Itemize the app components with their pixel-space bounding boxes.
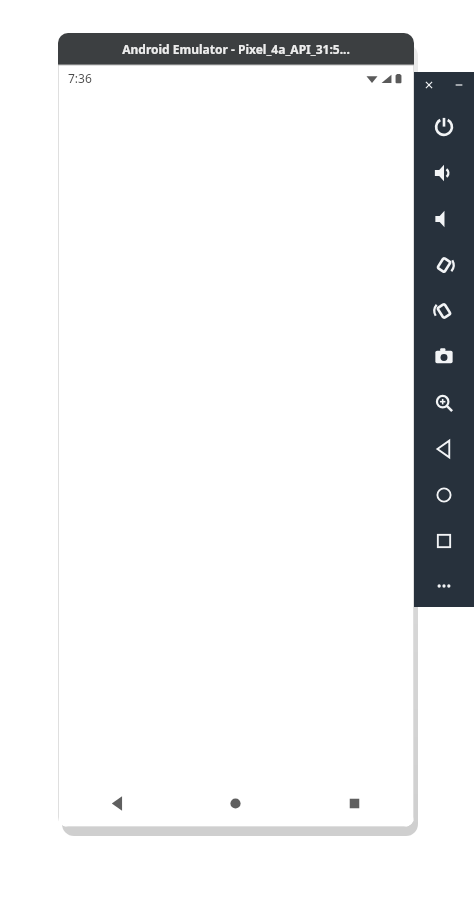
- button[interactable]: Back: [58, 779, 176, 827]
- button[interactable]: Home: [176, 779, 295, 827]
- button[interactable]: Back: [414, 426, 474, 472]
- button[interactable]: Minimise: [444, 72, 474, 98]
- button[interactable]: More: [414, 564, 474, 607]
- staticText: 7:36: [68, 70, 92, 86]
- button[interactable]: Home: [414, 472, 474, 518]
- button[interactable]: Rotate left: [414, 242, 474, 288]
- button[interactable]: Screenshot: [414, 334, 474, 380]
- button[interactable]: Power: [414, 104, 474, 150]
- button[interactable]: Rotate right: [414, 288, 474, 334]
- button[interactable]: Recent apps: [295, 779, 414, 827]
- button[interactable]: Overview: [414, 518, 474, 564]
- staticText: Android Emulator - Pixel_4a_API_31:5...: [122, 41, 350, 57]
- button[interactable]: Close: [414, 72, 444, 98]
- button[interactable]: Volume down: [414, 196, 474, 242]
- button[interactable]: Volume up: [414, 150, 474, 196]
- button[interactable]: Zoom: [414, 380, 474, 426]
